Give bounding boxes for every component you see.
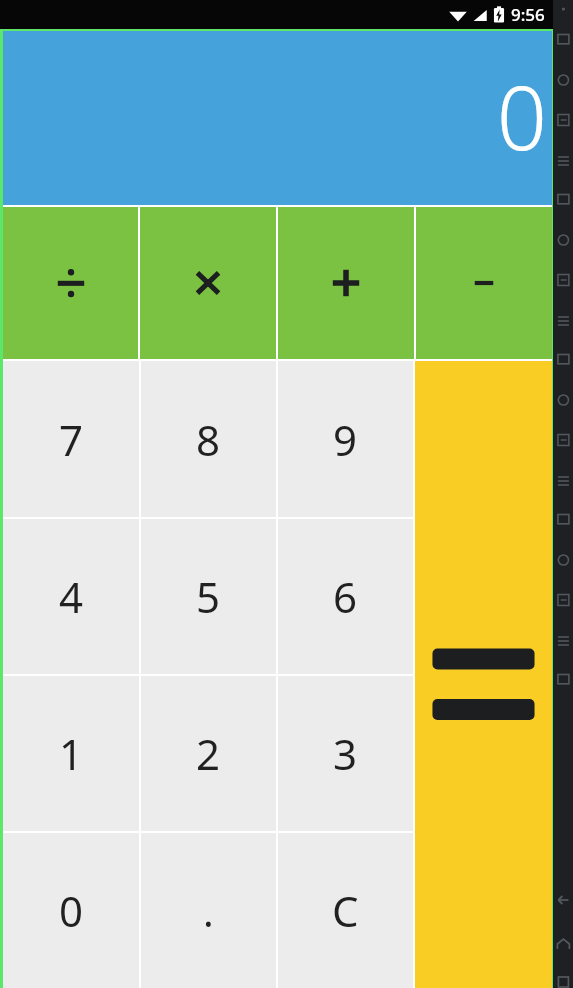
button[interactable]: 0 xyxy=(3,31,552,205)
button[interactable]: . xyxy=(141,833,276,988)
button[interactable]: 7 xyxy=(3,361,139,517)
button[interactable] xyxy=(416,207,552,359)
button[interactable] xyxy=(3,207,138,359)
staticText: 8 xyxy=(196,411,221,468)
button[interactable]: 5 xyxy=(141,519,276,674)
button[interactable]: 6 xyxy=(278,519,413,674)
staticText: 0 xyxy=(59,882,84,939)
staticText: 1 xyxy=(59,725,84,782)
staticText: 4 xyxy=(59,568,84,625)
staticText: . xyxy=(203,884,214,938)
button[interactable]: 3 xyxy=(278,676,413,831)
button[interactable] xyxy=(278,207,414,359)
staticText: C xyxy=(332,882,359,939)
button[interactable]: 9 xyxy=(278,361,413,517)
button[interactable]: Equals xyxy=(415,361,552,988)
staticText: 7 xyxy=(59,411,84,468)
staticText: 6 xyxy=(333,568,358,625)
button[interactable]: 8 xyxy=(141,361,276,517)
staticText: 9:56 xyxy=(511,3,545,26)
staticText: 5 xyxy=(196,568,221,625)
button[interactable]: 2 xyxy=(141,676,276,831)
button[interactable]: 1 xyxy=(3,676,139,831)
button[interactable] xyxy=(140,207,276,359)
staticText: 2 xyxy=(196,725,221,782)
staticText: 0 xyxy=(496,56,547,176)
button[interactable]: 0 xyxy=(3,833,139,988)
staticText: 3 xyxy=(333,725,358,782)
button[interactable]: C xyxy=(278,833,413,988)
staticText: 9 xyxy=(333,411,358,468)
button[interactable]: 4 xyxy=(3,519,139,674)
